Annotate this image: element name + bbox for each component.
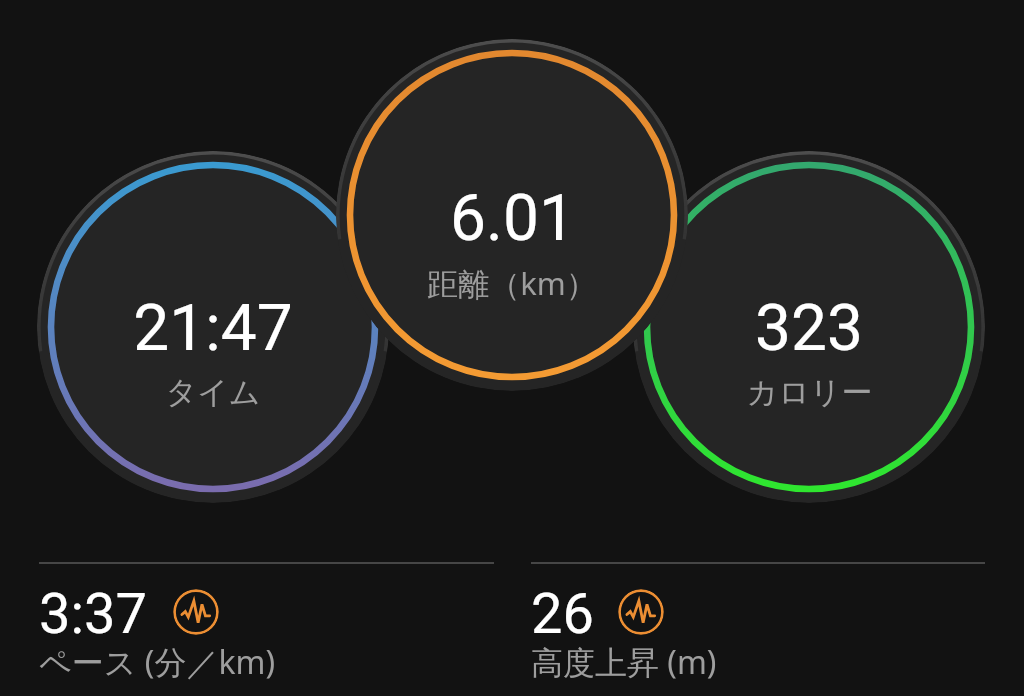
staticText: タイム — [165, 373, 261, 412]
button[interactable] — [39, 574, 494, 696]
staticText: ペース (分／km) — [39, 640, 276, 684]
button[interactable]: Distance 6.01 km — [336, 39, 688, 391]
button[interactable] — [531, 574, 985, 696]
staticText: 26 — [531, 581, 594, 647]
staticText: 323 — [755, 291, 863, 366]
staticText: 3:37 — [39, 581, 147, 647]
button[interactable]: Show graph — [173, 589, 219, 635]
button[interactable]: Elapsed time 21:47 — [37, 151, 389, 503]
staticText: 6.01 — [450, 181, 575, 256]
staticText: 高度上昇 (m) — [531, 640, 717, 684]
button[interactable]: Show graph — [618, 589, 664, 635]
staticText: カロリー — [746, 373, 873, 412]
staticText: 21:47 — [133, 291, 293, 366]
staticText: 距離（km） — [427, 262, 597, 304]
button[interactable]: Calories 323 — [633, 151, 985, 503]
